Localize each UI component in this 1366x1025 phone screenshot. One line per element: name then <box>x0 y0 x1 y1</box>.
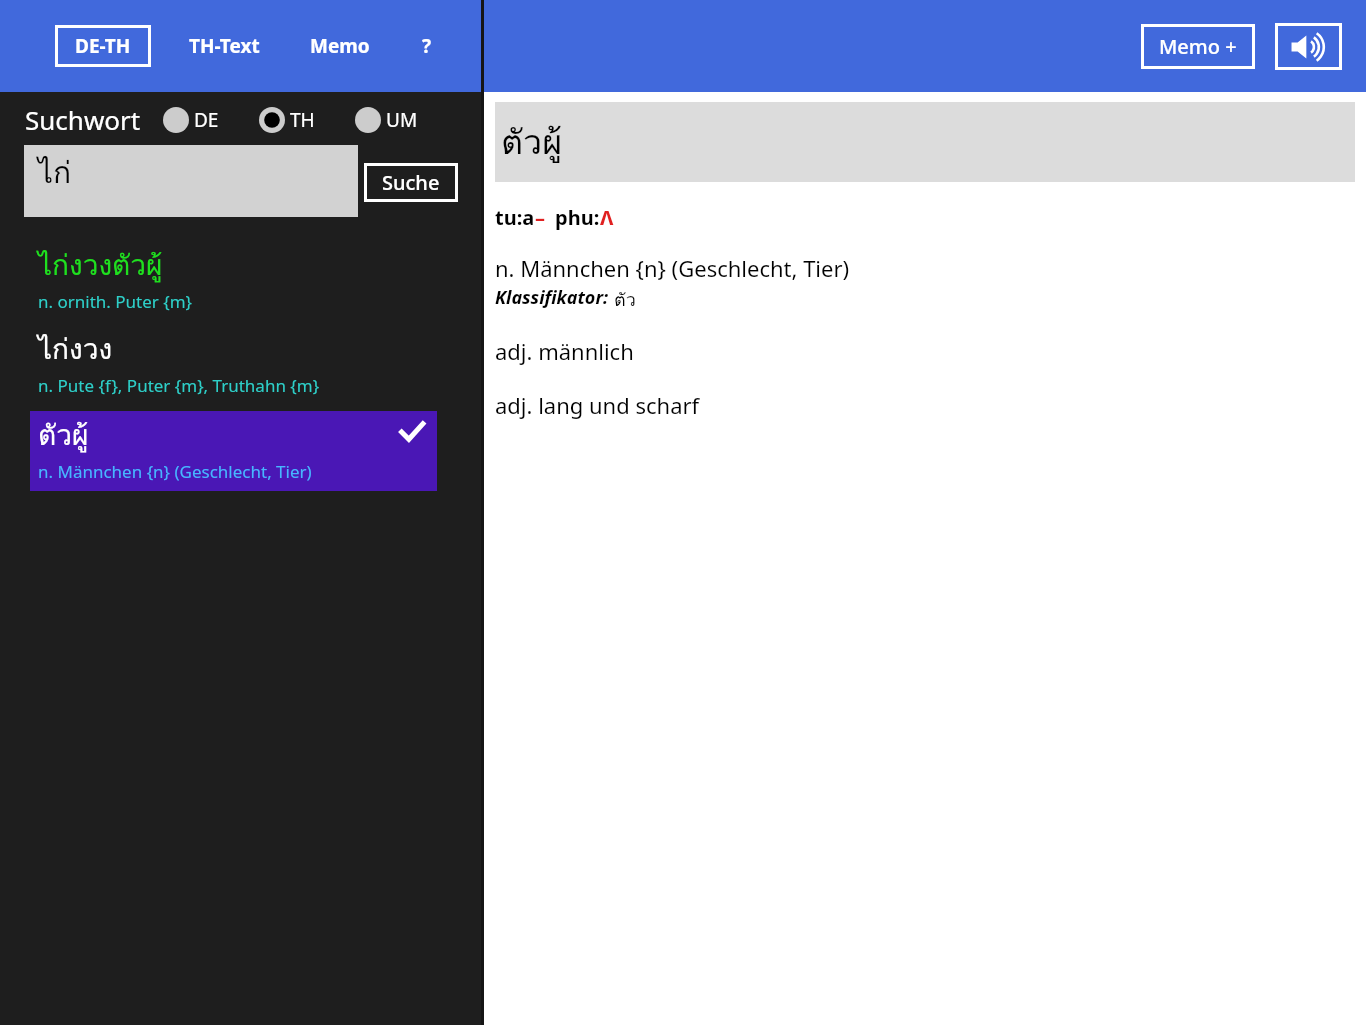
button[interactable]: ไก่ <box>24 145 358 217</box>
staticText: n. Männchen {n} (Geschlecht, Tier) <box>38 460 312 483</box>
staticText: DE-TH <box>75 33 131 59</box>
staticText: ? <box>422 33 432 59</box>
staticText: UM <box>386 107 418 133</box>
button[interactable]: DE-TH <box>55 25 151 67</box>
button[interactable]: ไก่งวง <box>0 327 481 397</box>
button[interactable]: Suche <box>364 163 458 202</box>
staticText: ตัวผู้ <box>38 413 89 458</box>
button[interactable]: Memo + <box>1141 24 1255 69</box>
staticText: n. ornith. Puter {m} <box>38 290 193 313</box>
button[interactable]: Memo <box>302 21 378 71</box>
staticText: TH <box>290 107 315 133</box>
staticText: Klassifikator: <box>495 285 609 310</box>
button[interactable]: DE <box>159 103 223 137</box>
staticText: Suchwort <box>25 102 141 137</box>
staticText: Memo + <box>1159 33 1237 60</box>
staticText: Suche <box>382 169 440 196</box>
button[interactable]: UM <box>351 103 422 137</box>
staticText: phu: <box>555 204 600 231</box>
staticText: adj. lang und scharf <box>495 390 700 420</box>
button[interactable]: ? <box>414 21 440 71</box>
staticText: n. Männchen {n} (Geschlecht, Tier) <box>495 253 850 283</box>
staticText: n. Pute {f}, Puter {m}, Truthahn {m} <box>38 374 320 397</box>
staticText: tu:a <box>495 204 535 231</box>
staticText: DE <box>194 107 219 133</box>
button[interactable]: TH-Text <box>181 21 268 71</box>
staticText: ตัวผู้ <box>501 115 563 169</box>
button[interactable]: TH <box>255 103 319 137</box>
staticText: Λ <box>600 204 614 231</box>
staticText: ตัว <box>614 285 636 314</box>
staticText: Memo <box>310 33 370 59</box>
button[interactable]: ตัวผู้ <box>30 411 437 491</box>
staticText: adj. männlich <box>495 336 634 366</box>
staticText: ไก่งวงตัวผู้ <box>38 243 163 288</box>
staticText: ไก่ <box>38 149 72 197</box>
staticText: ไก่งวง <box>38 327 113 372</box>
button[interactable]: Play pronunciation <box>1275 23 1342 70</box>
staticText: – <box>535 204 545 231</box>
button[interactable]: ไก่งวงตัวผู้ <box>0 243 481 313</box>
staticText: TH-Text <box>189 33 260 59</box>
